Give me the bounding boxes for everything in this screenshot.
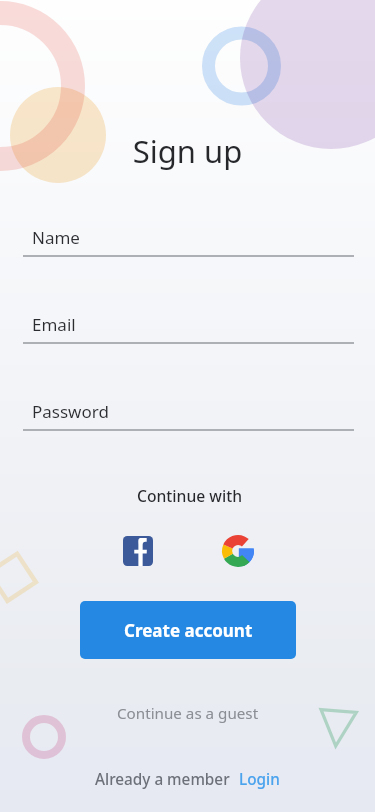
staticText: Continue as a guest <box>117 703 259 724</box>
button[interactable]: Login <box>239 769 280 790</box>
button[interactable]: Create account <box>80 601 296 659</box>
staticText: Password <box>32 400 109 423</box>
button[interactable]: Continue as a guest <box>105 698 271 729</box>
staticText: Create account <box>124 619 253 642</box>
button[interactable]: Continue with Google <box>222 535 254 567</box>
staticText: Name <box>32 226 80 249</box>
staticText: Continue with <box>2 485 375 506</box>
button[interactable]: Continue with Facebook <box>123 536 154 567</box>
staticText: Sign up <box>0 130 375 172</box>
staticText: Email <box>32 313 76 336</box>
staticText: Already a member <box>95 769 230 790</box>
staticText: Login <box>239 769 280 790</box>
